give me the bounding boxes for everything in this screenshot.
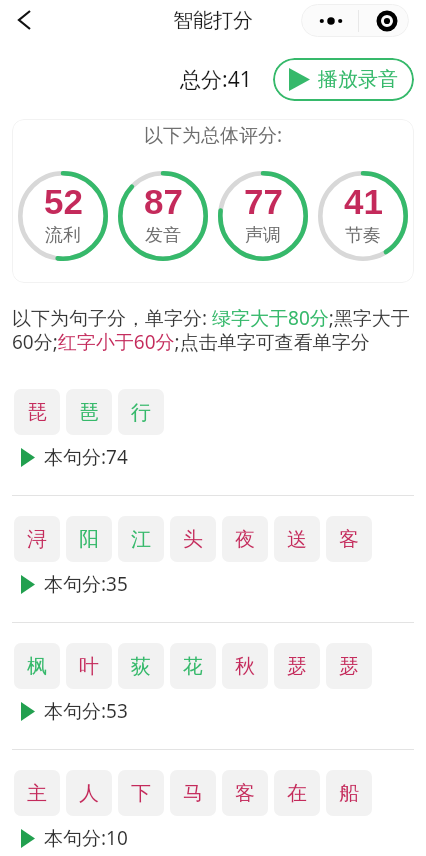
staticText: 秋 (235, 654, 255, 679)
button[interactable]: 夜 (222, 516, 268, 562)
button[interactable]: 行 (118, 389, 164, 435)
staticText: 瑟 (287, 654, 307, 679)
staticText: 播放录音 (318, 67, 398, 92)
button[interactable]: Back (8, 4, 40, 36)
button[interactable]: 荻 (118, 643, 164, 689)
staticText: 声调 (245, 224, 281, 247)
button[interactable]: 秋 (222, 643, 268, 689)
button[interactable]: 下 (118, 770, 164, 816)
button[interactable]: 人 (66, 770, 112, 816)
staticText: 41 (344, 182, 383, 221)
staticText: 流利 (45, 224, 81, 247)
staticText: 琵 (27, 400, 47, 425)
staticText: 客 (339, 527, 359, 552)
button[interactable]: Close mini program (359, 4, 409, 37)
staticText: 主 (27, 781, 47, 806)
button[interactable]: 瑟 (326, 643, 372, 689)
staticText: 头 (183, 527, 203, 552)
staticText: 瑟 (339, 654, 359, 679)
staticText: 下 (131, 781, 151, 806)
staticText: 马 (183, 781, 203, 806)
button[interactable]: 本句分:53 (21, 698, 128, 724)
staticText: 行 (131, 400, 151, 425)
staticText: 江 (131, 527, 151, 552)
staticText: 本句分:35 (44, 571, 128, 597)
staticText: 人 (79, 781, 99, 806)
button[interactable]: 浔 (14, 516, 60, 562)
button[interactable]: 客 (222, 770, 268, 816)
button[interactable]: 主 (14, 770, 60, 816)
staticText: 夜 (235, 527, 255, 552)
button[interactable]: 在 (274, 770, 320, 816)
staticText: 在 (287, 781, 307, 806)
staticText: 琶 (79, 400, 99, 425)
button[interactable]: 花 (170, 643, 216, 689)
staticText: 总分:41 (180, 65, 252, 94)
button[interactable]: 枫 (14, 643, 60, 689)
staticText: 叶 (79, 654, 99, 679)
staticText: 节奏 (345, 224, 381, 247)
button[interactable]: 头 (170, 516, 216, 562)
staticText: 77 (244, 182, 283, 221)
button[interactable]: 江 (118, 516, 164, 562)
button[interactable]: More options (301, 4, 358, 37)
button[interactable]: 本句分:74 (21, 444, 128, 470)
button[interactable]: 客 (326, 516, 372, 562)
staticText: 本句分:53 (44, 698, 128, 724)
staticText: 智能打分 (173, 8, 253, 33)
staticText: 送 (287, 527, 307, 552)
staticText: 本句分:74 (44, 444, 128, 470)
button[interactable]: 琶 (66, 389, 112, 435)
button[interactable]: 阳 (66, 516, 112, 562)
button[interactable]: 播放录音 (273, 58, 414, 101)
staticText: 枫 (27, 654, 47, 679)
staticText: 52 (44, 182, 83, 221)
staticText: 87 (144, 182, 183, 221)
staticText: 荻 (131, 654, 151, 679)
staticText: 花 (183, 654, 203, 679)
staticText: 阳 (79, 527, 99, 552)
button[interactable]: 马 (170, 770, 216, 816)
button[interactable]: 琵 (14, 389, 60, 435)
staticText: 船 (339, 781, 359, 806)
button[interactable]: 送 (274, 516, 320, 562)
staticText: 客 (235, 781, 255, 806)
button[interactable]: 船 (326, 770, 372, 816)
staticText: 以下为句子分，单字分: 绿字大于80分;黑字大于60分;红字小于60分;点击单字… (12, 305, 420, 355)
staticText: 发音 (145, 224, 181, 247)
button[interactable]: 本句分:10 (21, 825, 128, 851)
button[interactable]: 本句分:35 (21, 571, 128, 597)
staticText: 以下为总体评分: (144, 122, 283, 148)
staticText: 本句分:10 (44, 825, 128, 851)
button[interactable]: 瑟 (274, 643, 320, 689)
staticText: 浔 (27, 527, 47, 552)
button[interactable]: 叶 (66, 643, 112, 689)
